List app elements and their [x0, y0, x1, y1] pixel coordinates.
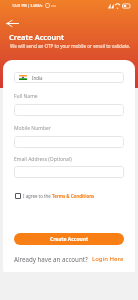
staticText: Email Address (Optional)	[14, 156, 72, 163]
staticText: Full Name	[14, 93, 38, 100]
button[interactable]: Back	[2, 15, 24, 31]
button[interactable]: Login Here	[92, 255, 124, 263]
button[interactable]: Create Account	[14, 233, 124, 245]
button[interactable]: I agree to the Terms & Conditions	[13, 189, 95, 202]
staticText: India	[32, 75, 43, 81]
staticText: Login Here	[92, 255, 124, 263]
staticText: We will send an OTP to your mobile or em…	[10, 43, 131, 49]
button[interactable]: India	[14, 72, 124, 83]
staticText: I agree to the Terms & Conditions	[23, 193, 95, 199]
button[interactable]	[14, 104, 124, 116]
button[interactable]	[14, 166, 124, 178]
staticText: Already have an account?	[14, 255, 88, 263]
staticText: 12:31 PM | 3.6KB/s	[12, 3, 43, 8]
staticText: Mobile Number	[14, 125, 51, 132]
staticText: Create Account	[9, 32, 65, 42]
button[interactable]	[14, 136, 124, 148]
staticText: Create Account	[50, 236, 89, 243]
